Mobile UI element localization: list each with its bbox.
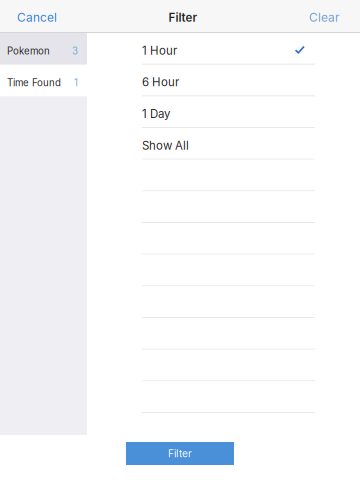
button[interactable]: 1 Day [142,96,315,128]
staticText: Cancel [17,10,57,25]
staticText: Filter [168,10,197,24]
button[interactable]: Time Found [0,65,87,96]
staticText: Filter [168,447,192,460]
button[interactable]: Filter [126,442,234,465]
staticText: Time Found [7,77,61,88]
button[interactable]: 1 Hour [142,33,315,65]
staticText: 1 [74,77,78,88]
staticText: 6 Hour [142,75,179,89]
staticText: Clear [309,10,339,25]
staticText: 1 Day [142,107,170,121]
staticText: Pokemon [7,45,50,57]
button[interactable]: Pokemon [0,33,87,65]
staticText: Show All [142,139,189,152]
button[interactable]: Show All [142,128,315,160]
button[interactable]: 6 Hour [142,65,315,96]
staticText: 1 Hour [142,44,177,57]
button[interactable]: Clear [299,7,360,28]
button[interactable]: Cancel [0,7,67,28]
staticText: 3 [72,45,78,57]
